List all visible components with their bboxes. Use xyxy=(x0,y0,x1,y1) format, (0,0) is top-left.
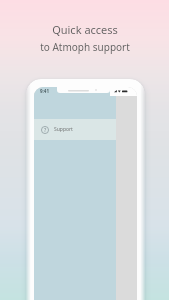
button[interactable]: ? xyxy=(34,119,116,140)
staticText: Quick access xyxy=(52,22,118,37)
staticText: 9:41 xyxy=(40,88,49,94)
staticText: Support xyxy=(54,126,73,133)
staticText: to Atmoph support xyxy=(40,40,130,54)
staticText: ? xyxy=(44,127,47,134)
